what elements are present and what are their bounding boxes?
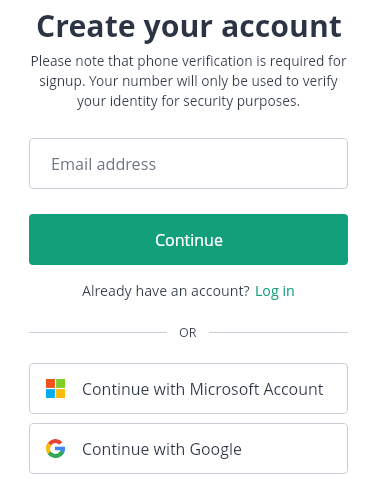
staticText: Continue (155, 229, 223, 251)
staticText: Continue with Google (82, 438, 242, 460)
staticText: Create your account (36, 5, 342, 46)
button[interactable]: Continue (29, 214, 348, 265)
button[interactable]: Google (29, 423, 348, 474)
staticText: Log in (255, 281, 295, 300)
staticText: Already have an account? (82, 281, 250, 300)
staticText: Continue with Microsoft Account (82, 378, 324, 400)
button[interactable]: Email address (29, 138, 348, 189)
button[interactable]: Microsoft (29, 363, 348, 414)
other: Google (46, 439, 65, 458)
button[interactable]: Log in (255, 281, 295, 300)
staticText: Please note that phone verification is r… (29, 51, 348, 110)
staticText: OR (179, 324, 197, 341)
other: Microsoft (46, 379, 65, 398)
staticText: Email address (51, 153, 157, 175)
